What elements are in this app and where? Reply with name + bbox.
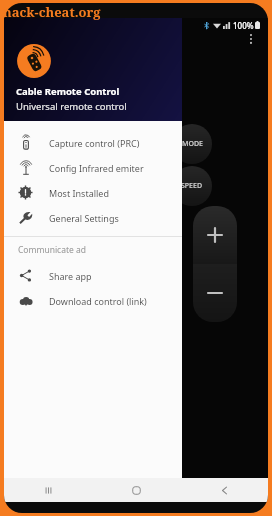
- staticText: Communicate ad: [18, 244, 87, 256]
- button[interactable]: Volume down: [193, 264, 237, 322]
- staticText: Cable Remote Control: [14, 31, 240, 47]
- staticText: Config Infrared emiter: [49, 162, 144, 174]
- staticText: Capture control (PRC): [49, 137, 140, 149]
- button[interactable]: Config Infrared emiter: [4, 155, 182, 180]
- staticText: ADD CONTROL: [108, 97, 165, 108]
- staticText: MODE: [182, 139, 203, 149]
- staticText: 1: [16, 58, 23, 73]
- staticText: Most Installed: [49, 187, 109, 199]
- staticText: 100%: [233, 20, 254, 31]
- button[interactable]: Share app: [4, 263, 182, 288]
- button[interactable]: Most Installed: [4, 180, 182, 205]
- button[interactable]: Back: [180, 478, 268, 502]
- button[interactable]: Download control (link): [4, 288, 182, 313]
- staticText: hack-cheat.org: [3, 3, 101, 21]
- button[interactable]: Home: [92, 478, 180, 502]
- staticText: General Settings: [49, 212, 119, 224]
- button[interactable]: Volume up: [193, 206, 237, 264]
- button[interactable]: MODE: [172, 124, 212, 164]
- staticText: Cable Remote Control: [16, 85, 120, 98]
- button[interactable]: SPEED: [172, 166, 212, 206]
- button[interactable]: More options: [240, 28, 262, 50]
- button[interactable]: ADD CONTROL: [4, 79, 268, 108]
- staticText: Universal remote control: [16, 100, 127, 113]
- staticText: SPEED: [181, 181, 203, 191]
- staticText: Download control (link): [49, 295, 147, 307]
- button[interactable]: General Settings: [4, 205, 182, 230]
- staticText: Share app: [49, 270, 92, 282]
- button[interactable]: Recents: [4, 478, 92, 502]
- button[interactable]: Capture control (PRC): [4, 130, 182, 155]
- button[interactable]: Cable Remote Control: [4, 18, 182, 121]
